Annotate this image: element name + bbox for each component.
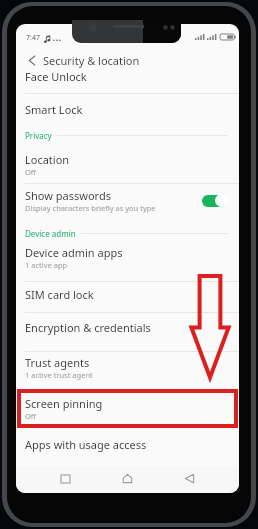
- staticText: Location: [25, 152, 70, 167]
- staticText: Off: [25, 411, 37, 421]
- staticText: SIM card lock: [25, 287, 94, 302]
- staticText: Security & location: [43, 53, 140, 68]
- staticText: Smart Lock: [25, 102, 83, 117]
- button[interactable]: Face Unlock: [16, 61, 239, 91]
- staticText: 1 active app: [25, 260, 68, 270]
- button[interactable]: Apps with usage access: [16, 425, 239, 463]
- button[interactable]: [201, 194, 228, 207]
- staticText: Display characters briefly as you type: [25, 203, 156, 213]
- staticText: Device admin apps: [25, 245, 123, 260]
- button[interactable]: Device admin apps: [16, 236, 239, 278]
- button[interactable]: Home: [116, 467, 139, 490]
- button[interactable]: Show passwords: [16, 181, 239, 220]
- staticText: Apps with usage access: [25, 437, 147, 452]
- staticText: Device admin: [25, 228, 76, 239]
- staticText: Show passwords: [25, 188, 111, 203]
- button[interactable]: Encryption & credentials: [16, 308, 239, 346]
- button[interactable]: Smart Lock: [16, 92, 239, 126]
- staticText: Face Unlock: [25, 69, 87, 84]
- staticText: Screen pinning: [25, 396, 103, 411]
- button[interactable]: SIM card lock: [16, 279, 239, 310]
- button[interactable]: Recent apps: [54, 467, 77, 490]
- button[interactable]: Back: [20, 48, 44, 72]
- staticText: Encryption & credentials: [25, 320, 151, 335]
- staticText: Privacy: [25, 130, 52, 141]
- staticText: 1 active trust agent: [25, 370, 93, 380]
- button[interactable]: Location: [16, 145, 239, 183]
- staticText: Off: [25, 167, 37, 177]
- button[interactable]: Screen pinning: [16, 390, 239, 427]
- staticText: 7:47: [26, 33, 40, 43]
- button[interactable]: Trust agents: [16, 348, 239, 387]
- staticText: Trust agents: [25, 355, 90, 370]
- button[interactable]: Back: [178, 467, 201, 490]
